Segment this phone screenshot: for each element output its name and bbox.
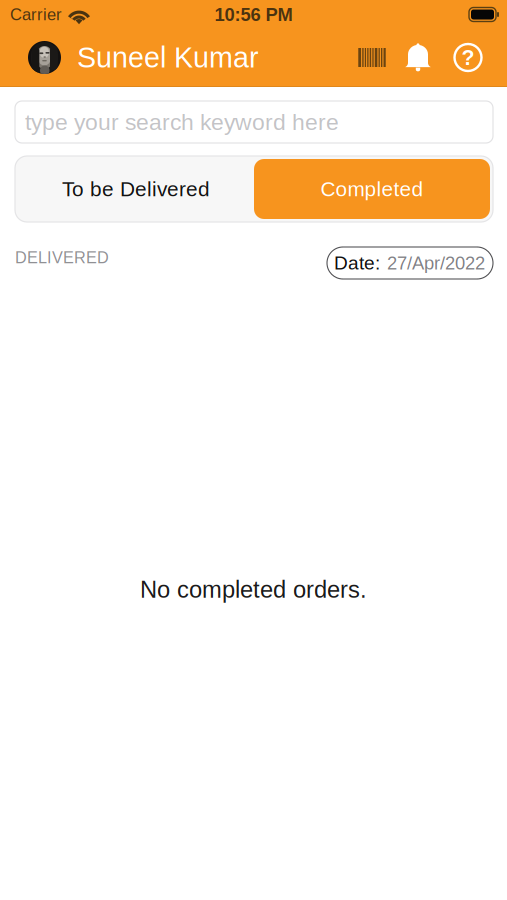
- staticText: ?: [461, 46, 474, 69]
- staticText: Completed: [320, 177, 423, 201]
- staticText: Carrier: [10, 5, 62, 24]
- staticText: Date:: [334, 252, 380, 274]
- button[interactable]: Date:: [327, 247, 493, 279]
- button[interactable]: Scan barcode: [360, 48, 384, 67]
- staticText: DELIVERED: [15, 248, 109, 267]
- button[interactable]: Completed: [254, 159, 490, 219]
- button[interactable]: Help: [454, 43, 482, 71]
- staticText: 10:56 PM: [214, 4, 292, 25]
- staticText: No completed orders.: [140, 576, 367, 603]
- staticText: Suneel Kumar: [77, 41, 259, 73]
- button[interactable]: Profile: [28, 41, 61, 74]
- button[interactable]: Notifications: [405, 42, 432, 72]
- staticText: type your search keyword here: [25, 109, 339, 135]
- staticText: 27/Apr/2022: [387, 253, 485, 273]
- staticText: To be Delivered: [62, 177, 210, 201]
- button[interactable]: To be Delivered: [18, 159, 254, 219]
- button[interactable]: type your search keyword here: [15, 101, 493, 143]
